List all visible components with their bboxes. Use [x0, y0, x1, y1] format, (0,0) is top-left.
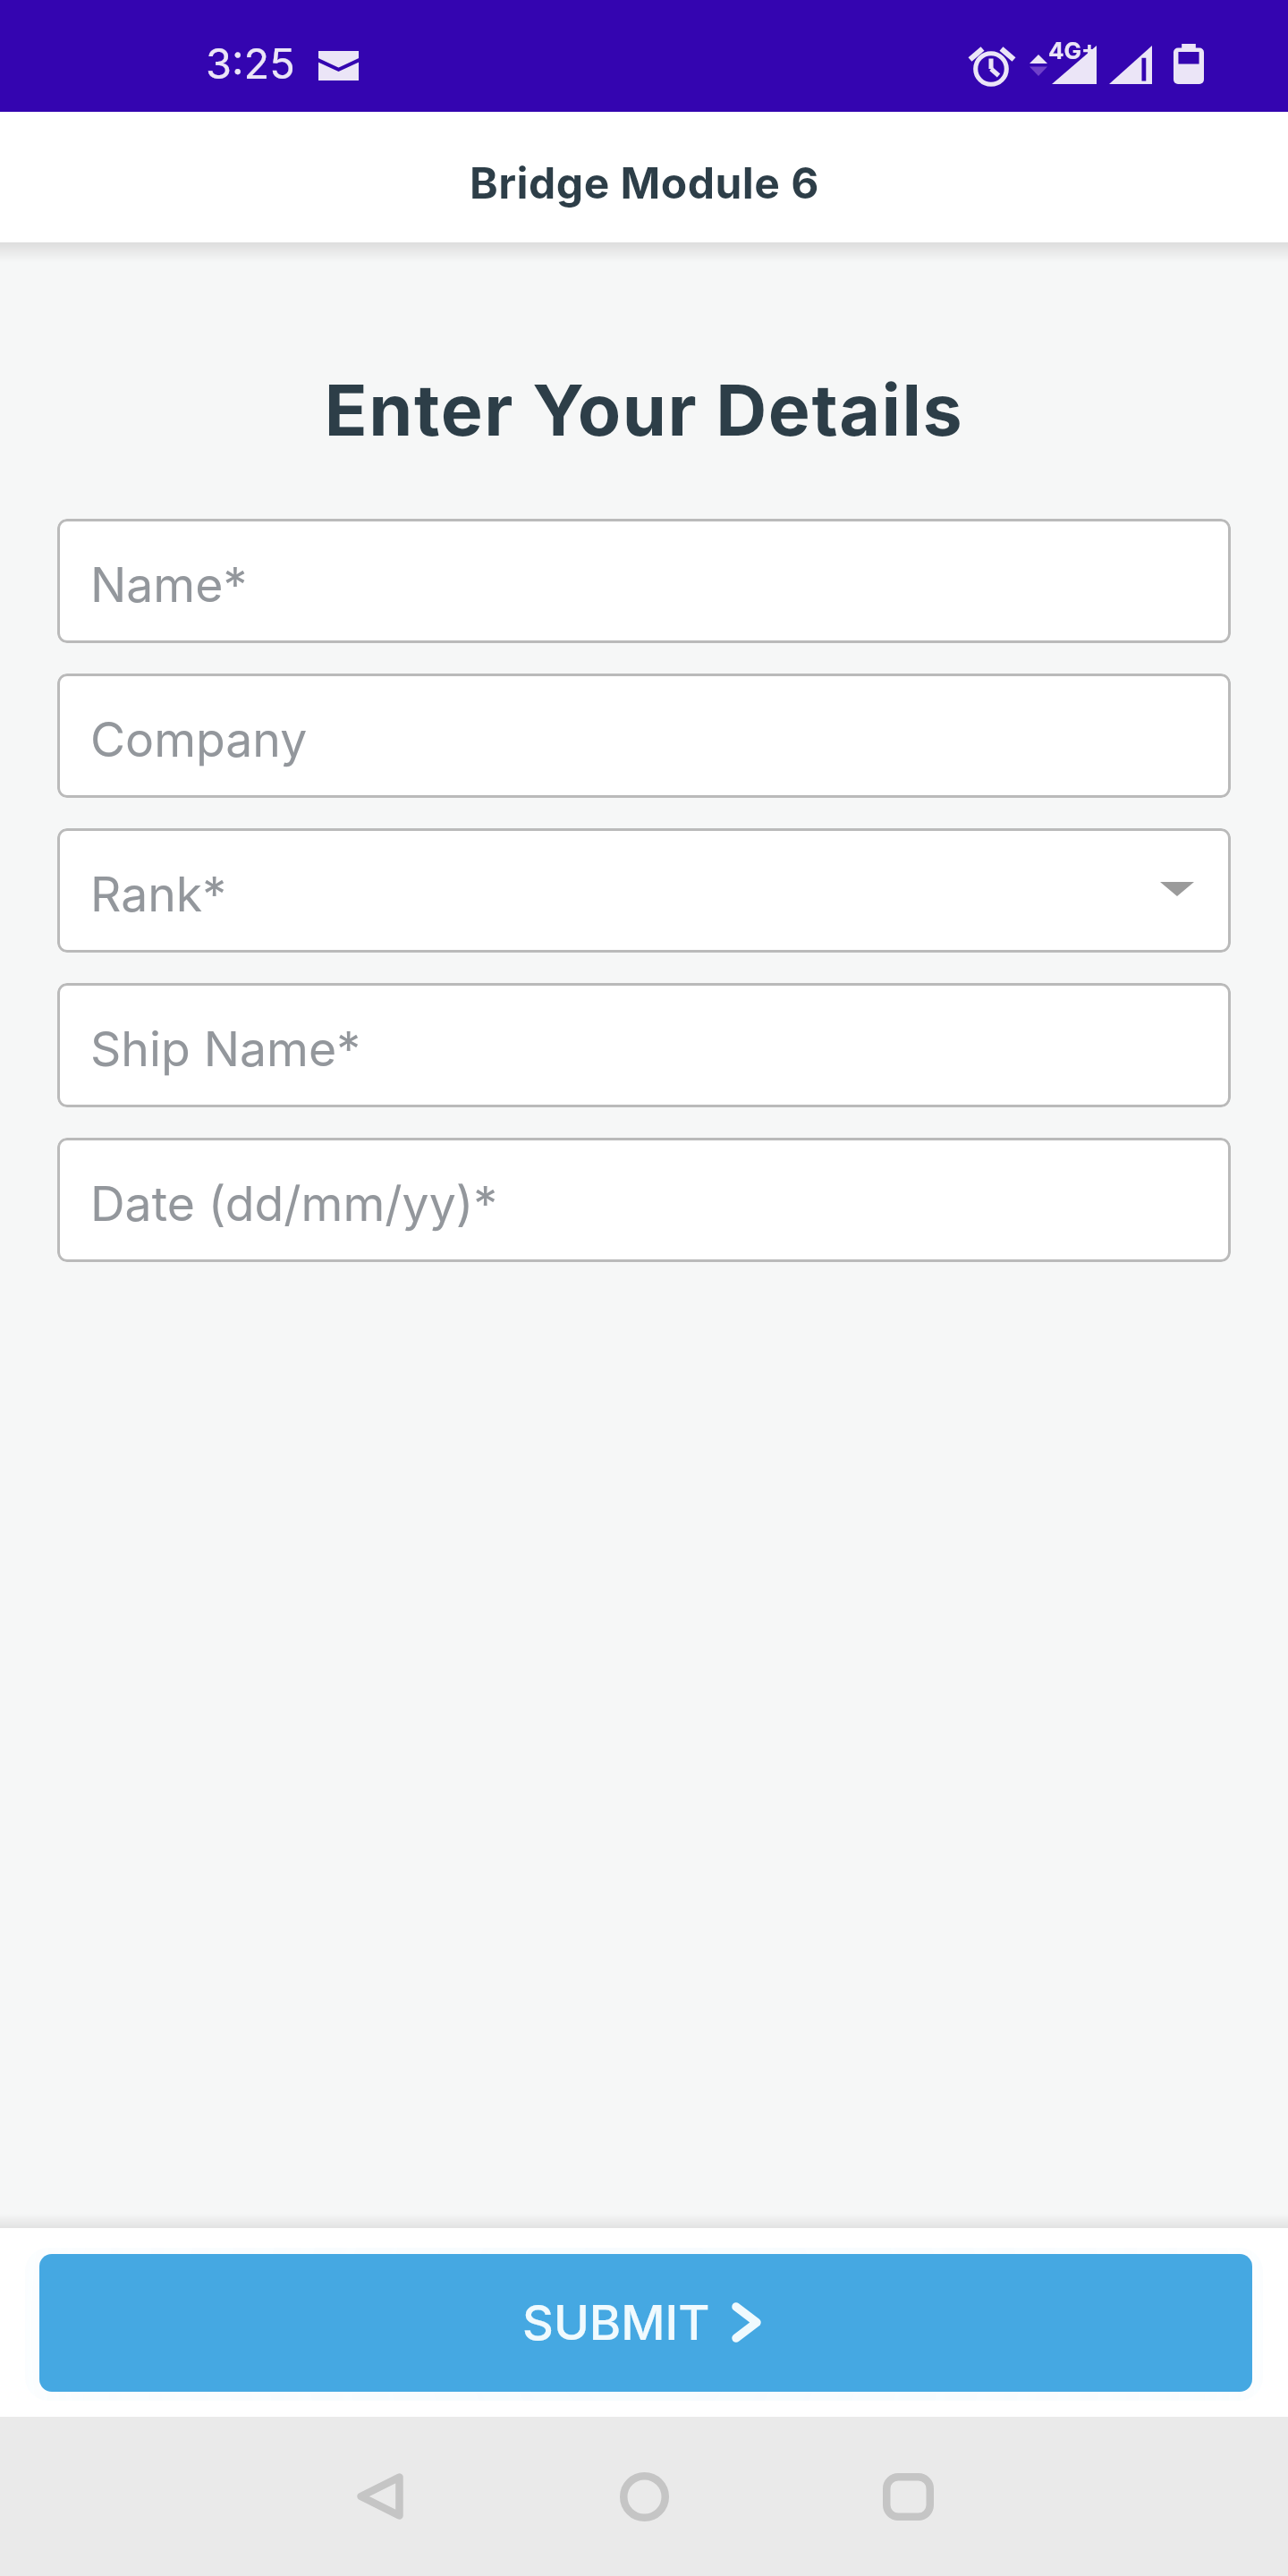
staticText: 3:25 — [206, 38, 295, 89]
staticText: Company — [90, 710, 308, 768]
staticText: Name* — [90, 555, 248, 614]
staticText: Date (dd/mm/yy)* — [90, 1174, 498, 1233]
staticText: SUBMIT — [522, 2293, 710, 2351]
staticText: Enter Your Details — [0, 367, 1288, 453]
button[interactable]: Company — [57, 674, 1231, 798]
staticText: Bridge Module 6 — [470, 157, 819, 208]
button[interactable]: Name* — [57, 519, 1231, 643]
button[interactable]: SUBMIT — [39, 2254, 1252, 2392]
staticText: Ship Name* — [90, 1020, 360, 1078]
button[interactable]: Back — [318, 2434, 443, 2559]
button[interactable]: Recent apps — [845, 2434, 970, 2559]
button[interactable]: Date (dd/mm/yy)* — [57, 1138, 1231, 1262]
button[interactable]: Open Rank* dropdown — [1142, 857, 1209, 924]
staticText: 4G+ — [1048, 37, 1097, 64]
button[interactable]: Ship Name* — [57, 983, 1231, 1107]
staticText: Rank* — [90, 865, 226, 923]
button[interactable]: Home — [581, 2434, 707, 2559]
button[interactable]: Rank* — [57, 828, 1231, 953]
